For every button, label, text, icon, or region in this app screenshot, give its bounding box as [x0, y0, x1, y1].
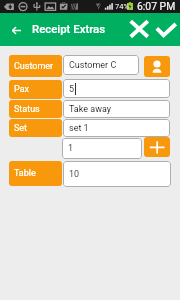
- button[interactable]: set 1: [63, 119, 170, 137]
- staticText: Customer C: [69, 60, 117, 71]
- staticText: 6:07 PM: [137, 0, 176, 12]
- button[interactable]: Set: [9, 119, 62, 137]
- staticText: Table: [14, 168, 36, 179]
- button[interactable]: Table: [9, 161, 62, 186]
- staticText: 74%: [115, 2, 130, 11]
- button[interactable]: 1: [62, 138, 142, 159]
- button[interactable]: Confirm: [153, 17, 179, 42]
- staticText: set 1: [69, 123, 89, 134]
- staticText: Set: [14, 123, 28, 134]
- button[interactable]: Back: [8, 22, 24, 38]
- button[interactable]: Pax: [9, 80, 62, 99]
- staticText: 10: [69, 169, 80, 180]
- staticText: Customer: [14, 61, 54, 72]
- staticText: Status: [14, 104, 40, 115]
- button[interactable]: Status: [9, 100, 62, 118]
- staticText: Pax: [14, 84, 29, 95]
- button[interactable]: Select customer: [144, 56, 170, 77]
- button[interactable]: Customer: [9, 55, 62, 77]
- button[interactable]: 5: [63, 79, 170, 98]
- staticText: Take away: [69, 104, 111, 115]
- button[interactable]: Add item: [144, 137, 170, 157]
- staticText: 5: [69, 84, 75, 95]
- button[interactable]: Take away: [63, 100, 170, 118]
- staticText: Receipt Extras: [32, 22, 106, 35]
- button[interactable]: 10: [63, 161, 171, 187]
- button[interactable]: Customer C: [63, 55, 139, 75]
- button[interactable]: Cancel: [127, 17, 151, 42]
- staticText: 1: [68, 143, 74, 154]
